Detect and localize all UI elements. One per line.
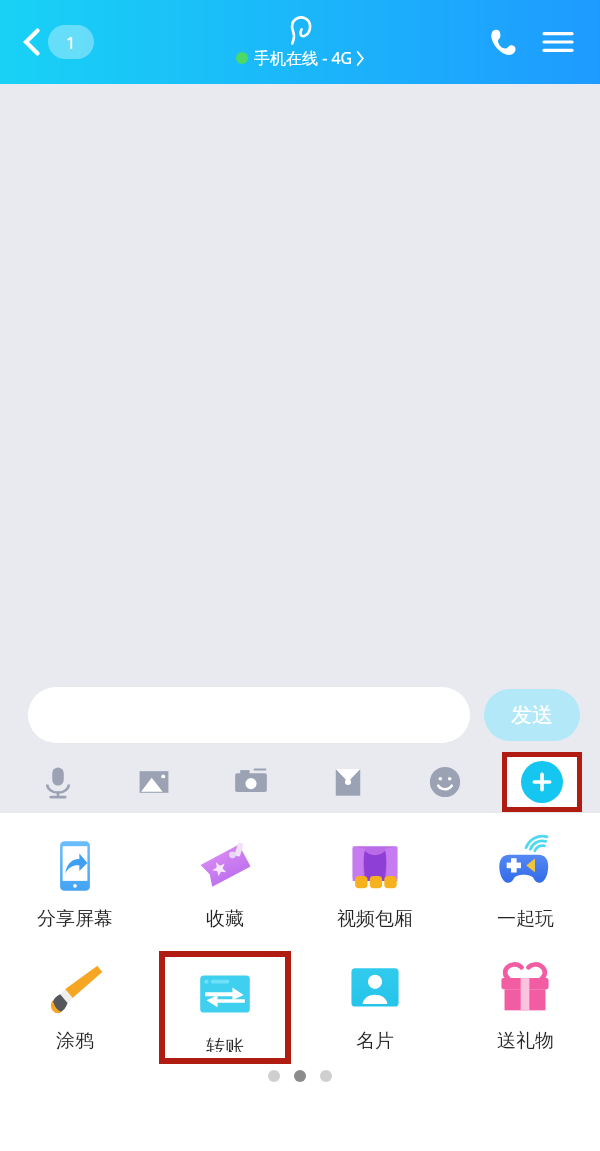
button[interactable]: Back <box>18 19 98 65</box>
staticText: 视频包厢 <box>337 907 413 931</box>
staticText: 送礼物 <box>497 1029 554 1053</box>
button[interactable]: 涂鸦 <box>44 951 106 1059</box>
button[interactable]: 分享屏幕 <box>37 829 113 937</box>
button[interactable]: 名片 <box>344 951 406 1059</box>
staticText: 转账 <box>206 1035 244 1052</box>
staticText: 分享屏幕 <box>37 907 113 931</box>
staticText: 一起玩 <box>497 907 554 931</box>
button[interactable]: 手机在线 - 4G <box>236 15 364 69</box>
staticText: 手机在线 - 4G <box>254 47 353 69</box>
button[interactable]: Photos <box>106 751 202 813</box>
button[interactable]: 视频包厢 <box>337 829 413 937</box>
button[interactable]: Menu <box>536 23 580 61</box>
button[interactable] <box>28 687 470 743</box>
button[interactable]: Emoji <box>396 751 493 813</box>
button[interactable]: 转账 <box>194 957 256 1058</box>
button[interactable]: 一起玩 <box>494 829 556 937</box>
button[interactable]: Voice <box>10 751 106 813</box>
staticText: 1 <box>66 31 76 54</box>
button[interactable]: Call <box>480 20 524 64</box>
button[interactable]: More <box>521 761 563 803</box>
button[interactable]: 发送 <box>484 689 580 741</box>
staticText: 发送 <box>511 702 553 728</box>
staticText: 涂鸦 <box>56 1029 94 1053</box>
button[interactable]: Red packet <box>299 751 396 813</box>
staticText: 收藏 <box>206 907 244 931</box>
button[interactable]: 送礼物 <box>494 951 556 1059</box>
staticText: 名片 <box>356 1029 394 1053</box>
button[interactable]: 收藏 <box>194 829 256 937</box>
button[interactable]: Camera <box>202 751 299 813</box>
